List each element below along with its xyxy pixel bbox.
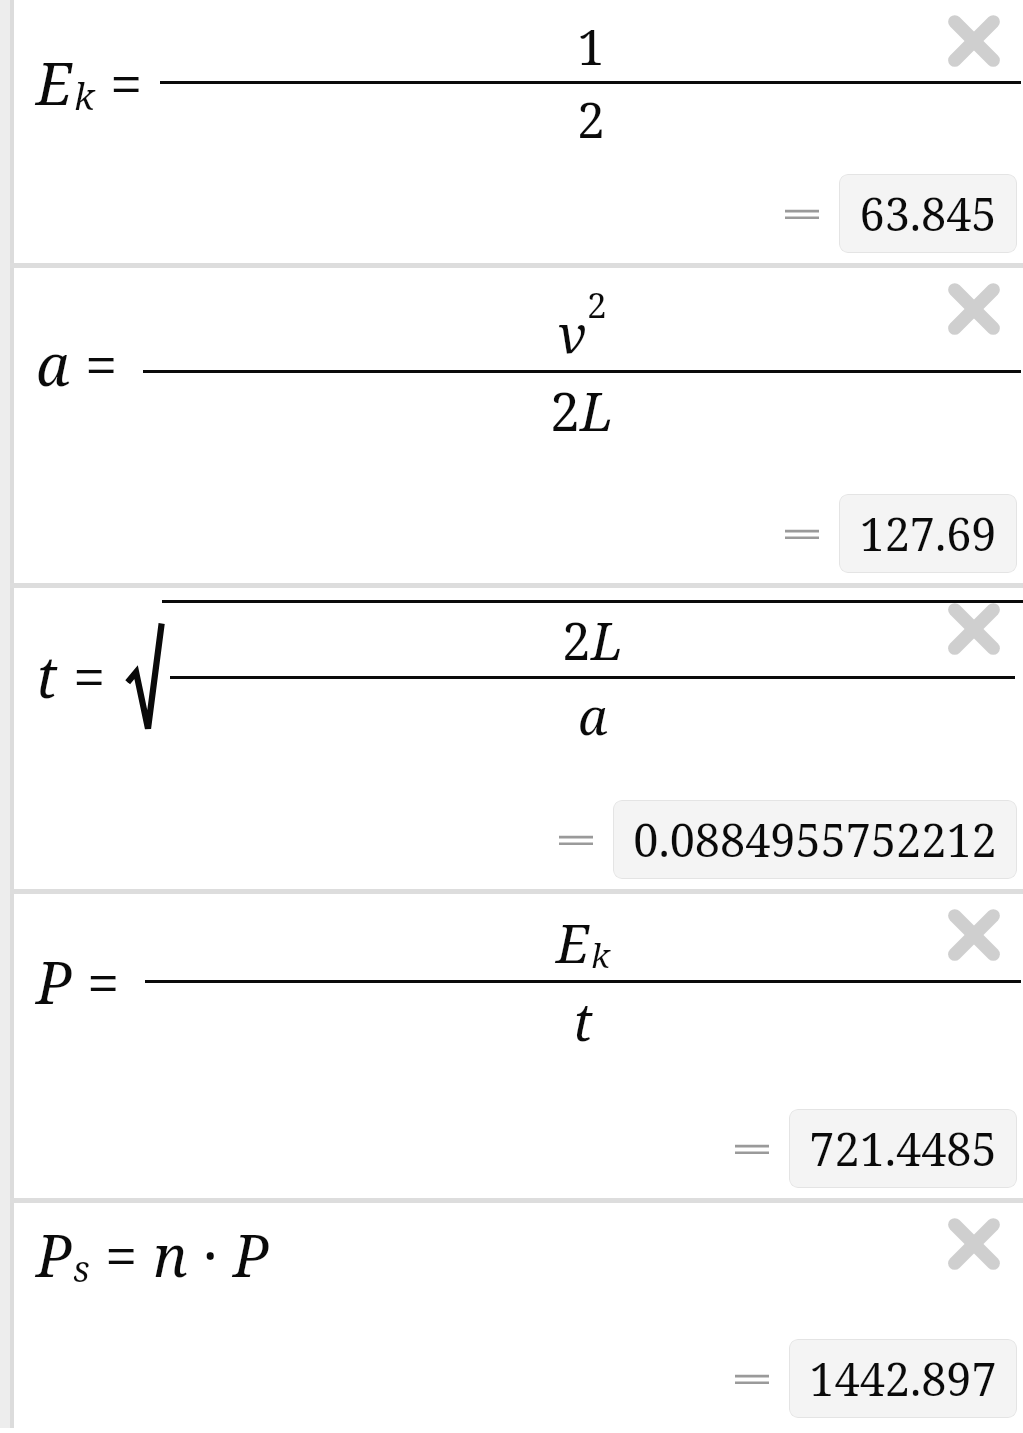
staticText: t [573, 984, 593, 1057]
button[interactable]: Delete formula [935, 590, 1013, 668]
button[interactable]: Delete formula [14, 894, 1023, 1198]
button[interactable]: 1442.897 [789, 1339, 1017, 1418]
staticText: v [558, 296, 587, 369]
button[interactable]: Delete formula [935, 1205, 1013, 1283]
staticText: E [556, 906, 590, 979]
staticText: = [58, 636, 121, 715]
button[interactable]: Delete formula [14, 268, 1023, 583]
staticText: s [73, 1244, 90, 1293]
button[interactable]: 63.845 [839, 174, 1017, 253]
button[interactable]: 0.0884955752212 [613, 800, 1017, 879]
staticText: 1442.897 [809, 1348, 997, 1409]
staticText: P [36, 942, 72, 1021]
staticText: a [36, 324, 70, 403]
staticText: 2 [562, 605, 591, 675]
button[interactable]: Delete formula [14, 0, 1023, 263]
staticText: 127.69 [859, 503, 997, 564]
staticText: · [188, 1215, 233, 1294]
staticText: 0.0884955752212 [633, 809, 997, 870]
button[interactable]: Delete formula [935, 270, 1013, 348]
staticText: L [580, 374, 614, 447]
button[interactable]: Delete formula [935, 896, 1013, 974]
staticText: 721.4485 [809, 1118, 997, 1179]
staticText: = [90, 1215, 153, 1294]
button[interactable]: Delete formula [14, 1203, 1023, 1428]
staticText: = [72, 942, 135, 1021]
button[interactable]: 721.4485 [789, 1109, 1017, 1188]
staticText: k [74, 72, 95, 121]
staticText: 2 [587, 280, 607, 328]
staticText: = [70, 324, 133, 403]
staticText: P [233, 1215, 269, 1294]
staticText: a [578, 680, 608, 750]
staticText: 2 [550, 374, 580, 447]
staticText: 1 [577, 12, 605, 80]
staticText: 63.845 [859, 183, 997, 244]
staticText: = [95, 43, 158, 122]
staticText: n [153, 1215, 188, 1294]
staticText: P [36, 1215, 72, 1294]
button[interactable]: Delete formula [935, 2, 1013, 80]
staticText: 2 [577, 85, 605, 153]
staticText: t [36, 636, 58, 715]
staticText: k [591, 933, 610, 978]
staticText: L [591, 605, 623, 675]
button[interactable]: 127.69 [839, 494, 1017, 573]
button[interactable]: Delete formula [14, 588, 1023, 889]
staticText: E [36, 43, 73, 122]
